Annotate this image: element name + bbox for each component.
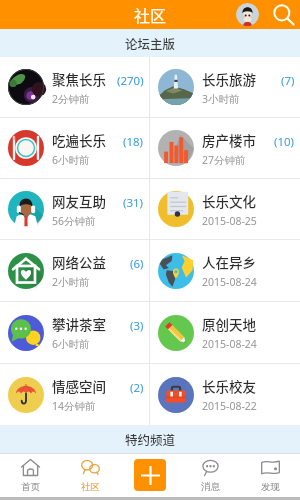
staticText: 长乐旅游 xyxy=(202,69,256,89)
staticText: 2015-08-25 xyxy=(202,214,257,228)
staticText: 14分钟前 xyxy=(52,399,96,413)
button[interactable]: 吃遍长乐 xyxy=(0,118,149,178)
staticText: (10) xyxy=(274,134,295,150)
button[interactable]: Add xyxy=(120,453,180,497)
staticText: 吃遍长乐 xyxy=(52,130,106,150)
button[interactable]: 攀讲茶室 xyxy=(0,302,149,363)
staticText: (7) xyxy=(281,73,295,89)
staticText: 长乐文化 xyxy=(202,191,256,211)
button[interactable]: 原创天地 xyxy=(150,302,300,363)
button[interactable]: 发现 xyxy=(240,453,300,497)
staticText: 6小时前 xyxy=(52,337,90,351)
button[interactable]: 人在异乡 xyxy=(150,240,300,301)
staticText: 首页 xyxy=(21,481,40,493)
button[interactable]: 社区 xyxy=(60,453,120,497)
staticText: 特约频道 xyxy=(125,430,176,448)
button[interactable]: 情感空间 xyxy=(0,364,149,425)
staticText: 长乐校友 xyxy=(202,376,256,396)
button[interactable]: 聚焦长乐 xyxy=(0,57,149,117)
staticText: (6) xyxy=(130,256,144,272)
staticText: 2分钟前 xyxy=(52,92,90,106)
staticText: 消息 xyxy=(201,481,220,493)
staticText: 情感空间 xyxy=(52,376,106,396)
staticText: (18) xyxy=(123,134,144,150)
staticText: 聚焦长乐 xyxy=(52,69,106,89)
button[interactable]: 长乐文化 xyxy=(150,179,300,239)
staticText: 人在异乡 xyxy=(202,252,256,272)
staticText: 攀讲茶室 xyxy=(52,314,106,334)
button[interactable]: 长乐旅游 xyxy=(150,57,300,117)
staticText: 3小时前 xyxy=(202,92,240,106)
staticText: (31) xyxy=(123,195,144,211)
button[interactable]: 长乐校友 xyxy=(150,364,300,425)
button[interactable]: 网友互助 xyxy=(0,179,149,239)
staticText: 2015-08-24 xyxy=(202,337,257,351)
staticText: 论坛主版 xyxy=(125,34,176,52)
staticText: (3) xyxy=(130,318,144,334)
button[interactable]: Search xyxy=(273,4,294,25)
staticText: (2) xyxy=(130,380,144,396)
staticText: 27分钟前 xyxy=(202,153,246,167)
staticText: 发现 xyxy=(261,481,280,493)
staticText: 2015-08-24 xyxy=(202,275,257,289)
button[interactable]: 消息 xyxy=(180,453,240,497)
button[interactable]: 网络公益 xyxy=(0,240,149,301)
staticText: 6小时前 xyxy=(52,153,90,167)
button[interactable]: 房产楼市 xyxy=(150,118,300,178)
staticText: 2小时前 xyxy=(52,275,90,289)
staticText: 原创天地 xyxy=(202,314,256,334)
staticText: (270) xyxy=(117,73,144,89)
staticText: 网络公益 xyxy=(52,252,106,272)
button[interactable]: 首页 xyxy=(0,453,60,497)
button[interactable]: Profile xyxy=(236,3,259,26)
staticText: 2015-08-22 xyxy=(202,399,257,413)
staticText: 社区 xyxy=(81,481,100,493)
staticText: 56分钟前 xyxy=(52,214,96,228)
staticText: 网友互助 xyxy=(52,191,106,211)
staticText: 房产楼市 xyxy=(202,130,256,150)
staticText: 社区 xyxy=(134,3,167,26)
